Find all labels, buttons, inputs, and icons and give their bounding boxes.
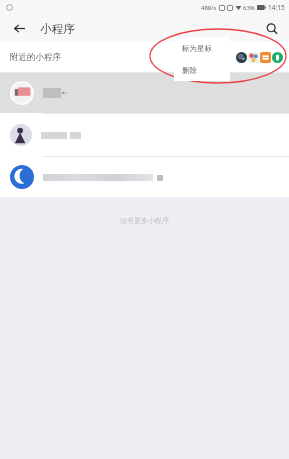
staticText: 488/s [201,4,217,12]
button[interactable]: 删除 [174,59,230,81]
staticText: 删除 [182,66,197,75]
button[interactable]: 标为星标 [174,37,230,59]
button[interactable]: Recent mini programs [236,52,283,63]
button[interactable]: Back [0,15,38,42]
button[interactable] [0,157,289,197]
button[interactable]: Search [255,15,289,42]
staticText: 小程序 [40,22,75,36]
staticText: 没有更多小程序 [120,216,169,225]
staticText: 14:15 [268,3,285,12]
button[interactable] [0,73,289,113]
staticText: 63% [243,4,255,12]
staticText: 附近的小程序 [10,52,61,63]
button[interactable] [0,114,289,156]
staticText: 标为星标 [182,44,212,53]
